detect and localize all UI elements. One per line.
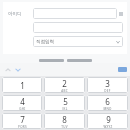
staticText: 5 [63,96,68,107]
staticText: PQRS [18,125,27,129]
staticText: 아이디 [8,11,22,17]
button[interactable]: 2 [44,77,85,93]
staticText: 8 [62,114,67,125]
button[interactable]: 1 [2,77,42,93]
staticText: TUV [61,125,68,129]
button[interactable]: 다음 입력칸 [13,65,23,75]
staticText: 7 [20,114,25,125]
button[interactable] [33,22,123,33]
staticText: MNO [103,107,112,111]
button[interactable]: 8 [44,113,85,129]
staticText: 직접입력 [36,39,54,45]
staticText: WXYZ [103,125,113,129]
button[interactable]: 3 [87,77,128,93]
button[interactable]: 7 [2,113,42,129]
staticText: JKL [62,107,68,111]
staticText: 4 [20,96,25,107]
button[interactable]: 직접입력 [33,36,123,47]
button[interactable] [39,59,64,62]
staticText: DEF [104,89,111,93]
button[interactable]: 6 [87,95,128,111]
button[interactable]: 이전 입력칸 [3,65,13,75]
staticText: GHI [19,107,26,111]
button[interactable]: 완료 [118,67,127,72]
staticText: 3 [105,78,110,89]
button[interactable]: 4 [2,95,42,111]
staticText: 2 [62,78,67,89]
staticText: 1 [20,80,25,91]
button[interactable] [33,8,117,19]
staticText: 9 [106,114,111,125]
button[interactable]: 5 [44,95,85,111]
button[interactable]: 9 [87,113,128,129]
staticText: 6 [105,96,110,107]
staticText: ABC [61,89,68,93]
button[interactable] [67,59,92,62]
